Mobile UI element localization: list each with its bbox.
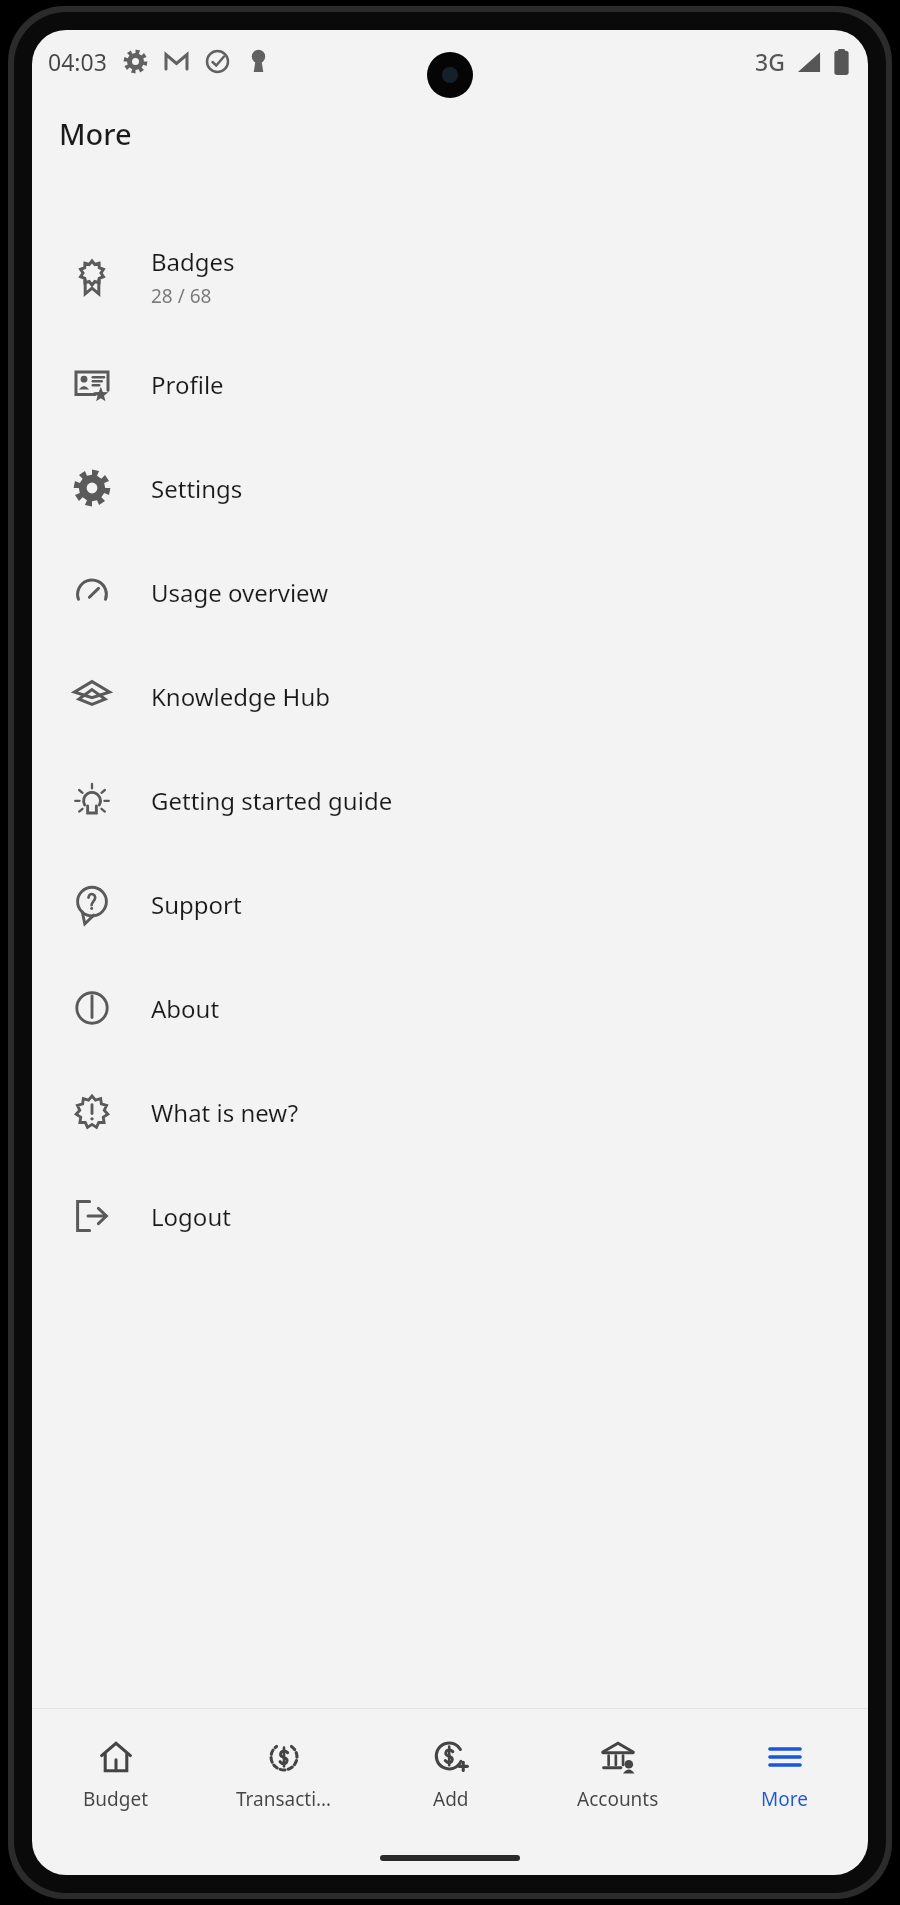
staticText: 04:03 bbox=[48, 46, 107, 77]
button[interactable]: Usage overview bbox=[32, 540, 868, 644]
button[interactable]: More bbox=[701, 1709, 868, 1841]
staticText: Accounts bbox=[577, 1786, 659, 1812]
button[interactable]: Accounts bbox=[534, 1709, 701, 1841]
staticText: About bbox=[151, 992, 220, 1025]
button[interactable]: Knowledge Hub bbox=[32, 644, 868, 748]
staticText: Settings bbox=[151, 472, 243, 505]
button[interactable]: About bbox=[32, 956, 868, 1060]
staticText: Getting started guide bbox=[151, 784, 393, 817]
staticText: Logout bbox=[151, 1200, 231, 1233]
button[interactable]: Budget bbox=[32, 1709, 200, 1841]
button[interactable]: Transacti… bbox=[200, 1709, 367, 1841]
staticText: What is new? bbox=[151, 1096, 299, 1129]
staticText: Usage overview bbox=[151, 576, 329, 609]
button[interactable]: Getting started guide bbox=[32, 748, 868, 852]
staticText: 28 / 68 bbox=[151, 283, 212, 309]
staticText: Add bbox=[433, 1786, 469, 1812]
button[interactable]: Support bbox=[32, 852, 868, 956]
button[interactable]: Logout bbox=[32, 1164, 868, 1268]
staticText: Knowledge Hub bbox=[151, 680, 330, 713]
staticText: More bbox=[761, 1786, 808, 1812]
button[interactable]: Add bbox=[367, 1709, 534, 1841]
staticText: Budget bbox=[83, 1786, 149, 1812]
button[interactable]: What is new? bbox=[32, 1060, 868, 1164]
staticText: Transacti… bbox=[236, 1786, 332, 1812]
button[interactable]: Badges bbox=[32, 222, 868, 332]
staticText: Badges bbox=[151, 245, 235, 278]
staticText: 3G bbox=[755, 46, 785, 77]
staticText: Support bbox=[151, 888, 242, 921]
staticText: More bbox=[59, 114, 132, 153]
button[interactable]: Profile bbox=[32, 332, 868, 436]
staticText: Profile bbox=[151, 368, 224, 401]
button[interactable]: Settings bbox=[32, 436, 868, 540]
